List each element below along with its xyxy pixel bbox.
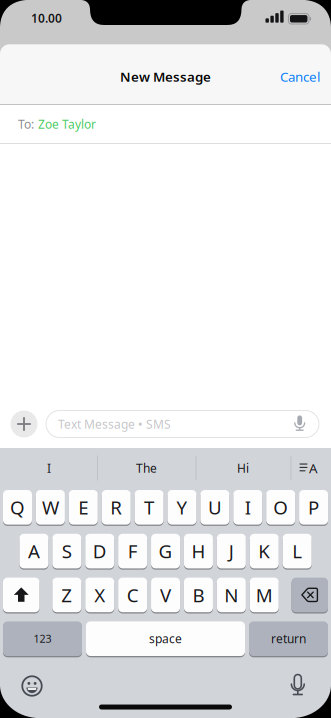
button[interactable]: H [184, 534, 213, 568]
staticText: X [94, 582, 105, 607]
staticText: Y [176, 495, 187, 520]
staticText: G [158, 539, 172, 563]
button[interactable]: R [102, 490, 131, 525]
button[interactable]: Zoe Taylor [38, 116, 96, 132]
staticText: I [245, 495, 251, 520]
button[interactable] [291, 415, 309, 435]
button[interactable] [291, 578, 328, 612]
button[interactable] [10, 410, 37, 437]
button[interactable]: W [36, 490, 65, 525]
button[interactable]: L [283, 534, 312, 568]
button[interactable] [21, 675, 42, 696]
staticText: C [127, 582, 139, 607]
staticText: E [78, 495, 88, 520]
staticText: B [192, 582, 204, 607]
button[interactable]: A [19, 534, 48, 568]
staticText: U [208, 495, 222, 520]
button[interactable]: Z [52, 578, 81, 612]
button[interactable]: J [217, 534, 246, 568]
button[interactable]: M [250, 578, 279, 612]
staticText: New Message [120, 68, 211, 85]
staticText: Text Message • SMS [58, 416, 171, 432]
staticText: K [258, 539, 270, 563]
button[interactable]: P [299, 490, 328, 525]
button[interactable]: Q [3, 490, 32, 525]
staticText: 10.00 [31, 10, 62, 26]
button[interactable]: Cancel [280, 68, 320, 85]
staticText: A [28, 539, 40, 563]
button[interactable]: return [249, 621, 328, 656]
staticText: Hi [237, 460, 249, 476]
button[interactable]: K [250, 534, 279, 568]
staticText: O [273, 495, 288, 520]
staticText: A [309, 459, 318, 477]
button[interactable]: S [52, 534, 81, 568]
staticText: I [47, 460, 51, 476]
staticText: 123 [33, 632, 51, 646]
staticText: Cancel [280, 68, 320, 85]
button[interactable] [3, 578, 39, 612]
staticText: To: [18, 116, 34, 132]
button[interactable]: B [184, 578, 213, 612]
button[interactable]: U [200, 490, 229, 525]
staticText: H [191, 539, 205, 563]
staticText: space [149, 631, 182, 647]
button[interactable]: 123 [3, 621, 82, 656]
staticText: D [93, 539, 107, 563]
staticText: S [62, 539, 72, 563]
staticText: The [136, 460, 157, 476]
staticText: P [308, 495, 319, 520]
button[interactable]: T [135, 490, 164, 525]
button[interactable]: Text Message • SMS [46, 410, 319, 437]
button[interactable]: E [69, 490, 98, 525]
staticText: M [256, 582, 273, 607]
staticText: W [42, 495, 59, 520]
button[interactable]: C [118, 578, 147, 612]
staticText: F [128, 539, 138, 563]
staticText: T [144, 495, 154, 520]
staticText: R [110, 495, 122, 520]
button[interactable]: Hi [203, 453, 283, 483]
staticText: Zoe Taylor [38, 116, 96, 132]
button[interactable]: X [85, 578, 114, 612]
button[interactable]: F [118, 534, 147, 568]
button[interactable]: I [233, 490, 262, 525]
button[interactable]: A [299, 458, 319, 478]
button[interactable]: The [101, 453, 191, 483]
button[interactable]: Y [167, 490, 196, 525]
button[interactable]: I [4, 453, 94, 483]
staticText: L [292, 539, 302, 563]
staticText: J [229, 539, 234, 563]
staticText: Q [10, 495, 25, 520]
button[interactable] [289, 673, 307, 697]
button[interactable]: G [151, 534, 180, 568]
button[interactable]: space [86, 621, 245, 656]
button[interactable]: O [266, 490, 295, 525]
staticText: Z [61, 582, 72, 607]
button[interactable]: D [85, 534, 114, 568]
button[interactable]: V [151, 578, 180, 612]
staticText: N [224, 582, 238, 607]
staticText: V [160, 582, 171, 607]
staticText: return [271, 631, 306, 647]
button[interactable]: N [217, 578, 246, 612]
